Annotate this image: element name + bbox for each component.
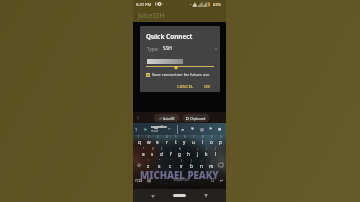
staticText: n [200,163,203,169]
button[interactable]: 8 [198,135,207,147]
staticText: ⚑ [209,127,213,131]
button[interactable]: 3 [153,135,162,147]
staticText: + [197,147,199,151]
button[interactable]: Recents [202,192,210,200]
staticText: d [160,151,163,157]
staticText: c [169,163,172,169]
staticText: 7 [193,135,195,139]
staticText: SSH [163,45,172,52]
staticText: ( [181,159,182,163]
staticText: ☺ [147,178,152,183]
button[interactable]: ) [211,147,220,159]
staticText: 2 [148,135,150,139]
staticText: OK [204,84,211,90]
button[interactable]: + [193,147,202,159]
staticText: Quick Connect [146,32,193,41]
staticText: b [190,163,193,169]
staticText: q [138,139,141,145]
staticText: 5 [175,135,177,139]
button[interactable]: Shift [134,163,143,167]
button[interactable]: _ [166,147,175,159]
staticText: ♥ [191,127,195,131]
staticText: ' [170,159,171,163]
button[interactable]: 9 [207,135,216,147]
button[interactable]: 2 [144,135,153,147]
button[interactable]: Keyboard settings [136,116,140,120]
button[interactable]: 5 [171,135,180,147]
staticText: 5:21 PM [136,2,152,7]
staticText: l [215,151,217,157]
button[interactable]: " [154,159,165,171]
staticText: f [170,151,172,157]
button[interactable]: Home [173,194,186,197]
button[interactable]: ; [206,159,216,171]
button[interactable]: * [139,147,148,159]
staticText: a [142,151,145,157]
button[interactable]: Autofill [154,114,179,122]
staticText: ?123 [135,178,143,183]
button[interactable]: 6 [180,135,189,147]
button[interactable]: Clipboard [183,114,209,122]
staticText: v [180,163,183,169]
staticText: w [147,139,151,145]
button[interactable]: & [175,147,184,159]
staticText: CANCEL [177,84,194,90]
staticText: s [151,151,154,157]
staticText: 3 [157,135,159,139]
staticText: 6 [184,135,186,139]
staticText: suggestion [151,125,167,129]
button[interactable]: 1 [134,135,144,147]
staticText: z [147,163,150,169]
staticText: 1 [138,135,140,139]
staticText: MICHAEL PEAKY [140,169,219,182]
staticText: 0 [220,135,222,139]
staticText: ≡ [181,127,185,131]
staticText: _ [170,147,172,151]
button[interactable]: 0 [216,135,225,147]
staticText: 1 [135,127,138,132]
staticText: t [175,139,177,145]
staticText: p [219,139,222,145]
staticText: m [209,163,214,169]
staticText: " [159,159,161,163]
staticText: & [179,147,181,151]
button[interactable]: ) [186,159,196,171]
other: More options [219,14,223,18]
staticText: JuiceSSH [138,11,165,20]
staticText: : [201,159,202,163]
button[interactable]: : [196,159,206,171]
staticText: ( [206,147,207,151]
staticText: e [156,139,159,145]
button[interactable]: OK [202,83,213,91]
staticText: h [187,151,190,157]
staticText: £ [161,147,163,151]
staticText: i [202,139,204,145]
button[interactable]: # [148,147,157,159]
button[interactable]: ( [176,159,186,171]
staticText: ! [148,159,149,163]
button[interactable]: CANCEL [175,83,196,91]
button[interactable]: 4 [162,135,171,147]
button[interactable]: - [184,147,193,159]
button[interactable]: ! [143,159,154,171]
staticText: Type: [147,46,159,52]
staticText: Autofill [163,116,175,121]
button[interactable]: ' [165,159,176,171]
staticText: j [197,151,199,157]
button[interactable]: Backspace [216,163,225,167]
button[interactable]: ( [202,147,211,159]
button[interactable]: Back [149,192,157,200]
staticText: Save connection for future use [152,72,210,77]
staticText: ↵ [220,178,224,183]
staticText: o [210,139,213,145]
staticText: - [188,147,189,151]
staticText: 62% [213,2,222,7]
button[interactable]: 7 [189,135,198,147]
staticText: # [152,147,154,151]
staticText: y [183,139,186,145]
button[interactable]: £ [157,147,166,159]
staticText: English (UK) [174,178,189,182]
staticText: □ [211,178,215,182]
staticText: 8 [202,135,204,139]
staticText: k [205,151,208,157]
